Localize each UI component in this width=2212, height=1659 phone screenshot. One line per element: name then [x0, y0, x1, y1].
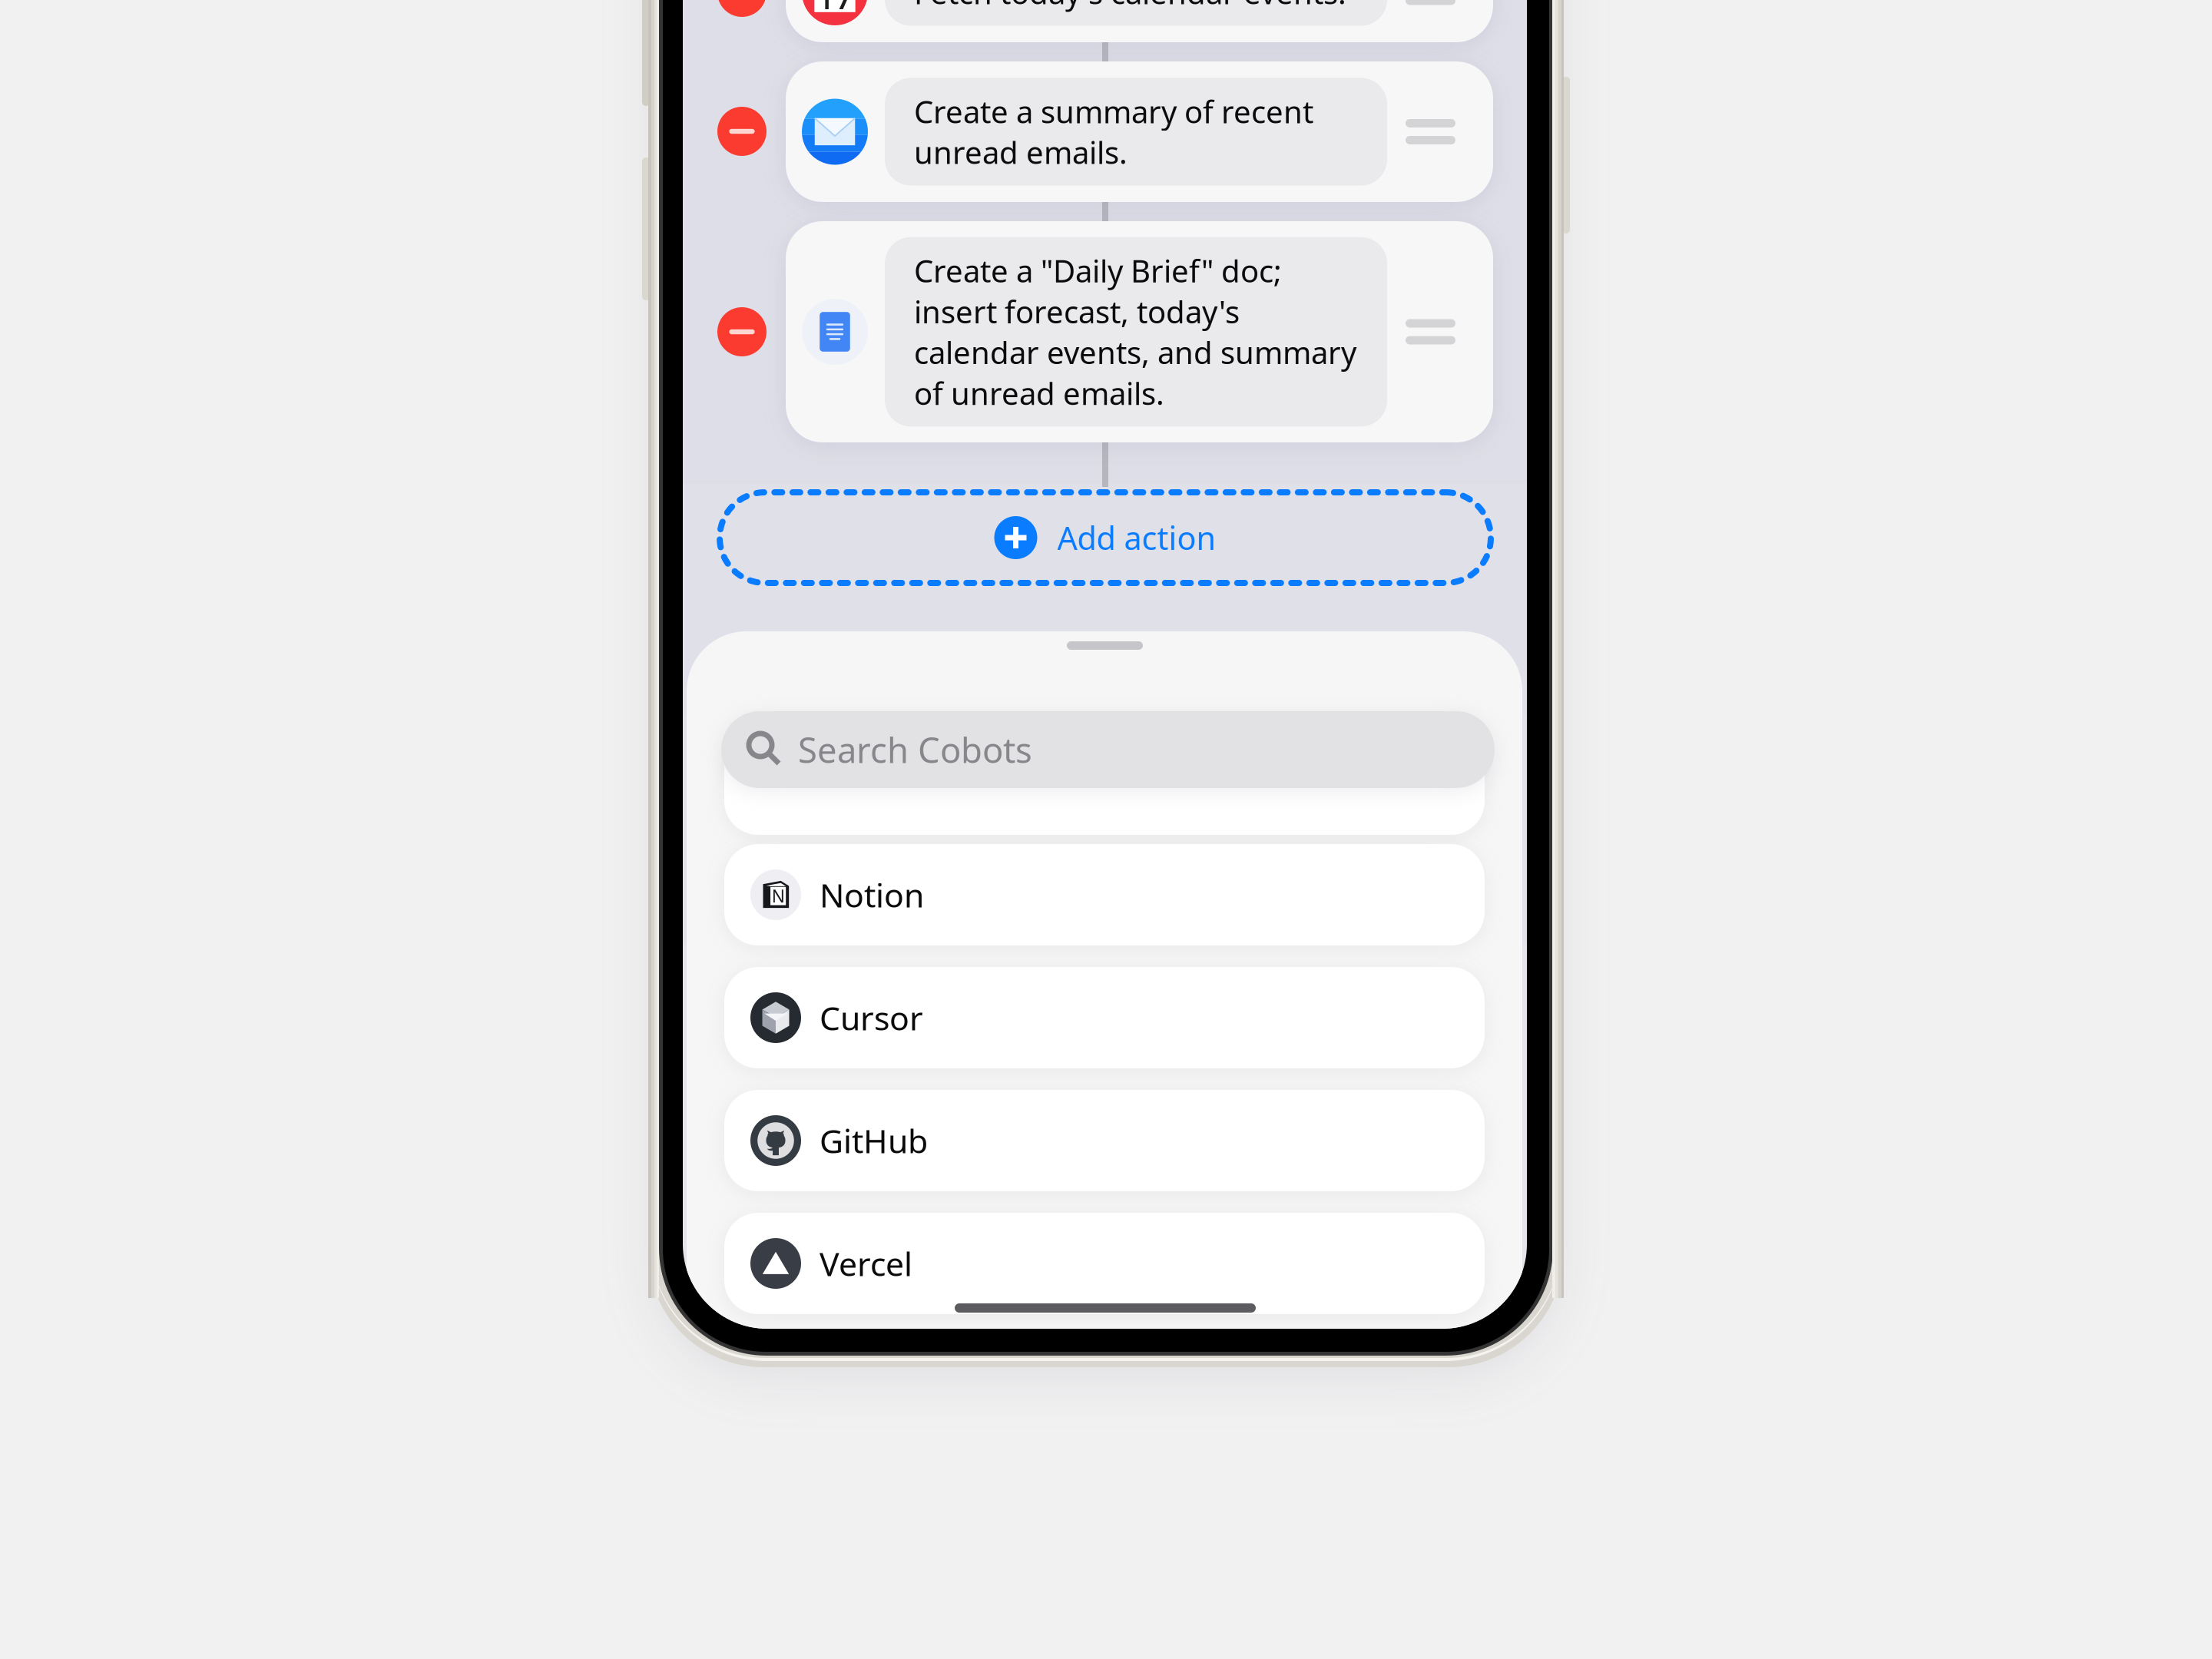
staticText: Fetch today's calendar events.	[914, 0, 1346, 13]
staticText: insert forecast, today's	[914, 291, 1240, 332]
button[interactable]: Add action	[720, 492, 1491, 583]
button[interactable]: N	[724, 844, 1485, 945]
staticText: Vercel	[820, 1242, 912, 1285]
staticText: unread emails.	[914, 132, 1128, 173]
button[interactable]: Search Cobots	[721, 711, 1495, 788]
staticText: Search Cobots	[798, 727, 1032, 773]
button[interactable]: Remove action	[717, 307, 767, 356]
button[interactable]: 17	[786, 0, 1493, 42]
button[interactable]: Remove action	[717, 107, 767, 156]
staticText: N	[772, 884, 785, 907]
staticText: Add action	[1057, 517, 1216, 559]
staticText: calendar events, and summary	[914, 332, 1356, 373]
staticText: GitHub	[820, 1119, 928, 1162]
staticText: Notion	[820, 873, 924, 917]
button[interactable]: Remove action	[717, 0, 767, 17]
button[interactable]: Vercel	[724, 1213, 1485, 1314]
button[interactable]: Create a "Daily Brief" doc;	[786, 221, 1493, 442]
button[interactable]: Cursor	[724, 967, 1485, 1068]
staticText: Create a summary of recent	[914, 91, 1313, 132]
staticText: of unread emails.	[914, 373, 1164, 413]
staticText: Create a "Daily Brief" doc;	[914, 250, 1282, 291]
button[interactable]: Create a summary of recent	[786, 61, 1493, 202]
button[interactable]: GitHub	[724, 1090, 1485, 1191]
staticText: 17	[816, 0, 853, 18]
staticText: Cursor	[820, 996, 923, 1039]
